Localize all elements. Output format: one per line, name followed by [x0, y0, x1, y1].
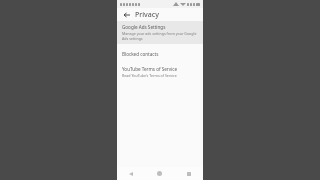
- staticText: Google Ads Settings: [122, 24, 166, 30]
- staticText: Blocked contacts: [122, 51, 159, 57]
- button[interactable]: Recent apps: [174, 167, 203, 180]
- button[interactable]: Back: [117, 167, 145, 180]
- staticText: Privacy: [135, 10, 159, 20]
- button[interactable]: Home: [145, 167, 174, 180]
- button[interactable]: YouTube Terms of Service: [117, 63, 203, 81]
- button[interactable]: Google Ads Settings: [117, 21, 203, 44]
- button[interactable]: Back: [121, 9, 132, 20]
- staticText: YouTube Terms of Service: [122, 66, 178, 72]
- staticText: Manage your ads settings from your Googl…: [122, 31, 198, 41]
- button[interactable]: Blocked contacts: [117, 48, 203, 60]
- staticText: Read YouTube's Terms of Service: [122, 73, 177, 78]
